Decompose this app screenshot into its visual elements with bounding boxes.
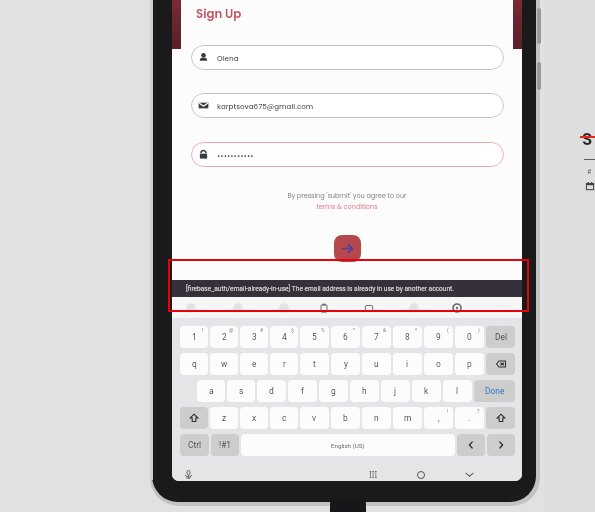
button[interactable]: , bbox=[424, 407, 453, 429]
staticText: # bbox=[587, 168, 592, 176]
staticText: S bbox=[582, 127, 593, 151]
staticText: e bbox=[252, 359, 257, 369]
button[interactable]: Keyboard toolbar item bbox=[182, 299, 200, 317]
button[interactable]: Keyboard toolbar item bbox=[315, 299, 333, 317]
staticText: III bbox=[369, 469, 378, 480]
button[interactable]: 9 bbox=[424, 326, 453, 348]
staticText: [firebase_auth/email-already-in-use] The… bbox=[186, 285, 454, 293]
button[interactable]: 5 bbox=[300, 326, 329, 348]
button[interactable]: Keyboard toolbar item bbox=[360, 299, 378, 317]
staticText: d bbox=[269, 386, 274, 396]
staticText: f bbox=[301, 386, 304, 396]
button[interactable]: z bbox=[210, 407, 238, 429]
button[interactable]: s bbox=[227, 380, 255, 402]
staticText: 8 bbox=[405, 332, 410, 342]
staticText: p bbox=[467, 359, 472, 369]
staticText: Sign Up bbox=[196, 6, 242, 23]
button[interactable]: j bbox=[381, 380, 410, 402]
button[interactable]: 1 bbox=[180, 326, 208, 348]
button[interactable]: Del bbox=[486, 326, 515, 348]
button[interactable]: o bbox=[424, 353, 453, 375]
button[interactable]: m bbox=[393, 407, 422, 429]
button[interactable]: SHIFT bbox=[180, 407, 208, 429]
button[interactable]: Hide keyboard bbox=[459, 465, 479, 481]
button[interactable]: Keyboard toolbar item bbox=[229, 299, 247, 317]
button[interactable]: Home bbox=[411, 465, 431, 481]
button[interactable]: d bbox=[257, 380, 286, 402]
button[interactable]: 2 bbox=[210, 326, 238, 348]
staticText: ) bbox=[478, 327, 480, 333]
button[interactable]: c bbox=[270, 407, 298, 429]
button[interactable]: u bbox=[362, 353, 391, 375]
button[interactable]: y bbox=[331, 353, 360, 375]
button[interactable]: v bbox=[300, 407, 329, 429]
staticText: h bbox=[362, 386, 367, 396]
button[interactable]: h bbox=[350, 380, 379, 402]
button[interactable]: ••••••••••• bbox=[191, 142, 504, 167]
staticText: a bbox=[209, 386, 214, 396]
button[interactable]: NEXT bbox=[487, 434, 515, 456]
staticText: ••••••••••• bbox=[217, 150, 254, 160]
button[interactable]: Keyboard toolbar item bbox=[275, 299, 293, 317]
staticText: c bbox=[282, 413, 287, 423]
staticText: !#1 bbox=[219, 440, 232, 450]
button[interactable]: Recents bbox=[363, 465, 383, 481]
button[interactable]: English (US) bbox=[241, 434, 455, 456]
button[interactable]: t bbox=[300, 353, 329, 375]
staticText: terms & conditions bbox=[172, 202, 522, 211]
button[interactable]: b bbox=[331, 407, 360, 429]
button[interactable]: Keyboard toolbar item bbox=[448, 299, 466, 317]
button[interactable]: l bbox=[443, 380, 472, 402]
staticText: Ctrl bbox=[188, 440, 202, 450]
button[interactable]: BACKSPACE bbox=[486, 353, 515, 375]
button[interactable]: w bbox=[210, 353, 238, 375]
staticText: & bbox=[383, 327, 387, 333]
button[interactable]: karptsova675@gmail.com bbox=[191, 93, 504, 118]
button[interactable]: Done bbox=[474, 380, 515, 402]
staticText: , bbox=[438, 413, 440, 423]
other: SHIFT bbox=[486, 407, 515, 429]
button[interactable]: p bbox=[455, 353, 484, 375]
staticText: w bbox=[221, 359, 228, 369]
button[interactable]: PREV bbox=[457, 434, 485, 456]
staticText: 9 bbox=[436, 332, 441, 342]
button[interactable]: 6 bbox=[331, 326, 360, 348]
other: PREV bbox=[457, 434, 485, 456]
button[interactable]: Ctrl bbox=[180, 434, 209, 456]
button[interactable]: . bbox=[455, 407, 484, 429]
staticText: Del bbox=[495, 332, 507, 342]
staticText: % bbox=[321, 327, 325, 333]
button[interactable]: q bbox=[180, 353, 208, 375]
staticText: m bbox=[404, 413, 412, 423]
button[interactable]: 4 bbox=[270, 326, 298, 348]
button[interactable]: Olena bbox=[191, 45, 504, 70]
staticText: l bbox=[456, 386, 459, 396]
button[interactable]: x bbox=[240, 407, 268, 429]
button[interactable]: a bbox=[197, 380, 225, 402]
staticText: $ bbox=[291, 327, 294, 333]
staticText: o bbox=[436, 359, 441, 369]
button[interactable]: SHIFT bbox=[486, 407, 515, 429]
button[interactable]: !#1 bbox=[211, 434, 239, 456]
button[interactable]: i bbox=[393, 353, 422, 375]
staticText: 2 bbox=[222, 332, 227, 342]
staticText: r bbox=[283, 359, 286, 369]
staticText: u bbox=[374, 359, 379, 369]
button[interactable]: Voice input bbox=[180, 466, 196, 481]
button[interactable]: 0 bbox=[455, 326, 484, 348]
button[interactable]: 8 bbox=[393, 326, 422, 348]
button[interactable]: e bbox=[240, 353, 268, 375]
staticText: 3 bbox=[252, 332, 257, 342]
button[interactable]: r bbox=[270, 353, 298, 375]
button[interactable]: Keyboard toolbar item bbox=[405, 299, 423, 317]
button[interactable]: k bbox=[412, 380, 441, 402]
button[interactable]: Submit bbox=[334, 235, 361, 262]
staticText: b bbox=[343, 413, 348, 423]
button[interactable]: f bbox=[288, 380, 317, 402]
staticText: @ bbox=[229, 327, 234, 333]
button[interactable]: n bbox=[362, 407, 391, 429]
staticText: ⋯ bbox=[497, 301, 505, 310]
button[interactable]: 7 bbox=[362, 326, 391, 348]
button[interactable]: 3 bbox=[240, 326, 268, 348]
button[interactable]: g bbox=[319, 380, 348, 402]
